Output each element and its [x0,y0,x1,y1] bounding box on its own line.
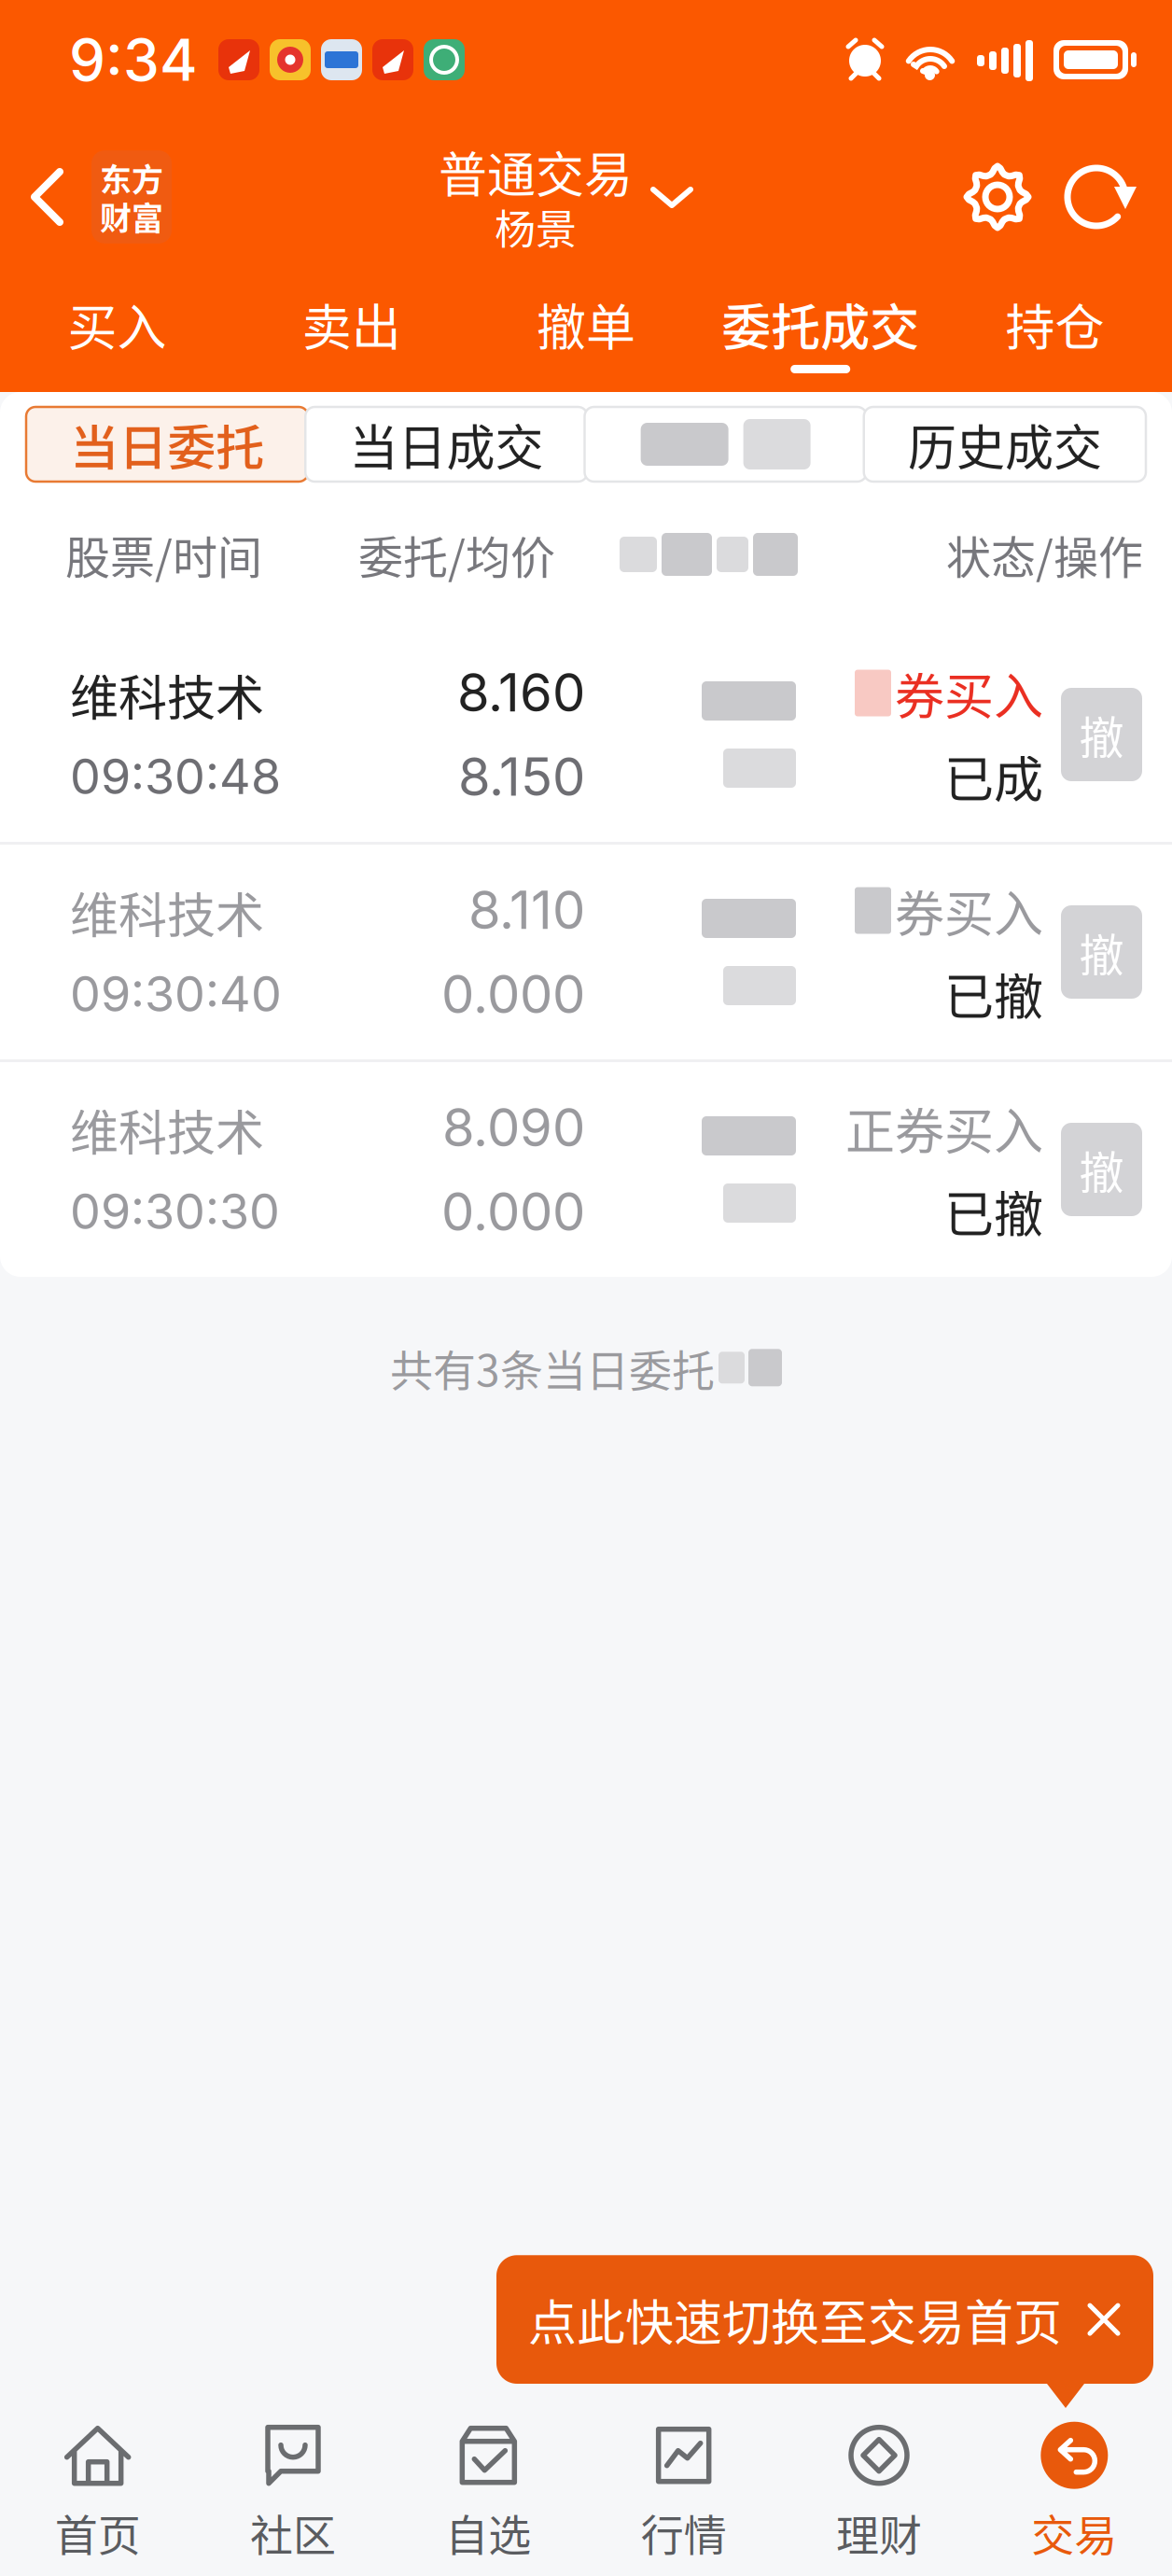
staticText: 维科技术 [70,666,264,723]
staticText: 券买入 [895,881,1043,940]
staticText: 撤 [1079,925,1124,979]
button[interactable]: 买入 [0,293,234,373]
button[interactable]: 首页 [0,2398,195,2576]
staticText: 维科技术 [70,883,264,941]
button[interactable]: 刷新 [1062,160,1137,234]
staticText: 历史成交 [908,415,1102,473]
staticText: 持仓 [1005,295,1104,354]
staticText: 财富 [100,197,163,235]
button[interactable]: 自选 [391,2398,586,2576]
button[interactable]: 点此快速切换至交易首页 [496,2255,1153,2384]
staticText: 杨景 [495,202,577,251]
staticText: 09:30:40 [70,967,282,1021]
button[interactable]: 交易 [977,2398,1172,2576]
staticText: 首页 [55,2507,141,2558]
staticText: 8.160 [457,663,585,721]
button[interactable]: 社区 [195,2398,391,2576]
staticText: 维科技术 [70,1101,264,1158]
staticText: 股票/时间 [65,528,262,581]
staticText: 9:34 [69,28,198,92]
staticText: 自选 [445,2507,531,2558]
button[interactable]: 行情 [586,2398,781,2576]
button[interactable]: 卖出 [234,293,469,373]
button[interactable] [585,407,867,482]
staticText: 正券买入 [845,1099,1043,1157]
button[interactable]: 撤 [1061,688,1142,781]
button[interactable]: 普通交易 [439,143,694,251]
staticText: 卖出 [302,295,401,354]
staticText: 当日成交 [349,415,543,473]
staticText: 09:30:48 [70,749,281,803]
button[interactable]: 维科技术 [0,845,1172,1059]
button[interactable]: 历史成交 [864,407,1146,482]
staticText: 买入 [68,295,167,354]
staticText: 8.150 [458,748,585,806]
staticText: 8.090 [442,1098,585,1156]
staticText: 普通交易 [439,143,633,200]
staticText: 撤 [1079,1143,1124,1196]
staticText: 点此快速切换至交易首页 [528,2291,1062,2348]
staticText: 0.000 [441,965,585,1023]
staticText: 已撤 [944,964,1043,1023]
button[interactable]: 持仓 [938,293,1172,373]
staticText: 东方 [100,159,163,196]
staticText: 撤单 [537,295,635,354]
button[interactable]: 理财 [781,2398,977,2576]
staticText: 0.000 [441,1183,585,1241]
button[interactable]: 撤单 [469,293,703,373]
button[interactable]: 设置 [961,161,1034,233]
button[interactable]: 返回 [28,150,172,243]
button[interactable]: 当日委托 [26,407,308,482]
staticText: 社区 [250,2507,336,2558]
staticText: 理财 [836,2507,922,2558]
button[interactable]: 维科技术 [0,627,1172,842]
staticText: 当日委托 [70,415,264,473]
staticText: 委托成交 [721,295,919,354]
button[interactable]: 委托成交 [703,293,938,373]
staticText: 撤 [1079,708,1124,761]
staticText: 已成 [944,747,1043,805]
button[interactable]: 撤 [1061,1123,1142,1216]
staticText: 已撤 [944,1182,1043,1240]
staticText: 共有3条当日委托 [390,1342,715,1393]
button[interactable]: 撤 [1061,905,1142,999]
staticText: 委托/均价 [358,528,555,581]
staticText: 8.110 [468,881,585,939]
staticText: 09:30:30 [70,1184,280,1238]
staticText: 状态/操作 [946,528,1143,581]
staticText: 行情 [641,2507,727,2558]
button[interactable]: 当日成交 [305,407,587,482]
staticText: 券买入 [895,664,1043,722]
staticText: 交易 [1031,2507,1117,2558]
button[interactable]: 维科技术 [0,1062,1172,1277]
